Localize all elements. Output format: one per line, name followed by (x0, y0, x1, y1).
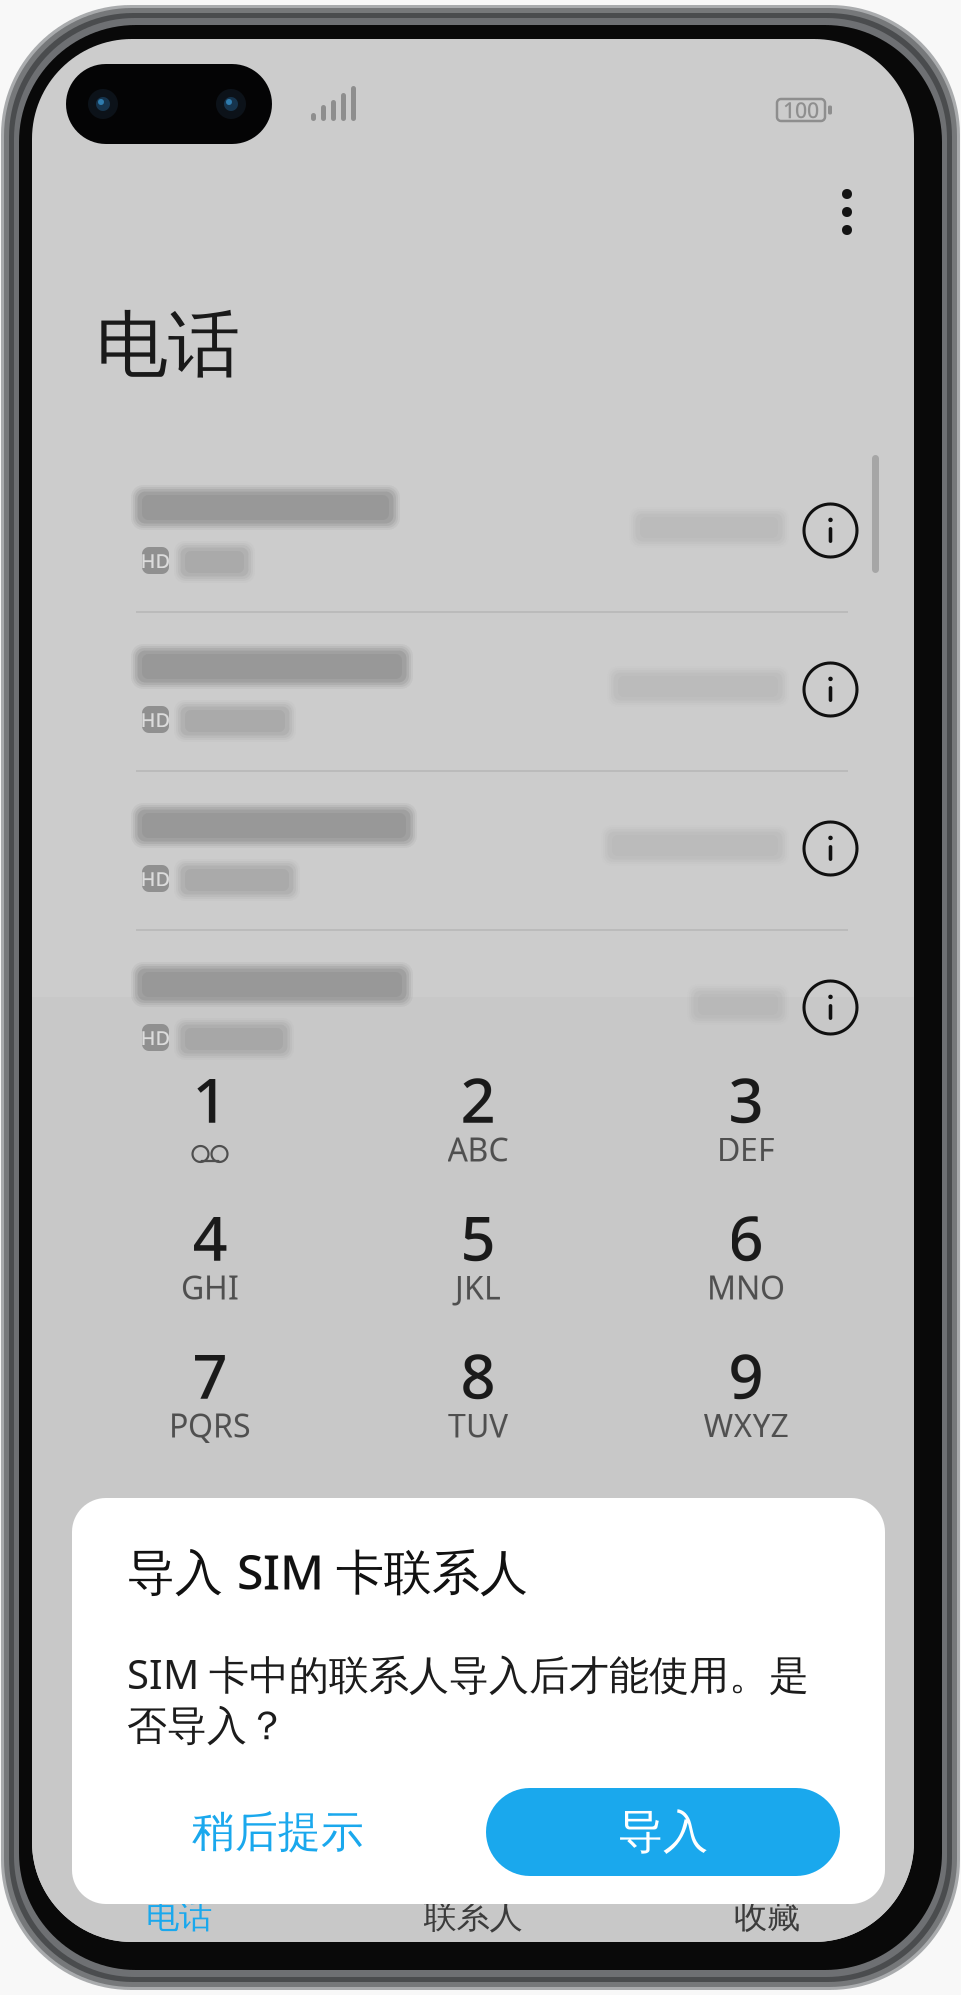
staticText: 收藏 (734, 1896, 800, 1937)
staticText: HD (140, 547, 170, 574)
staticText: SIM 卡中的联系人导入后才能使用。是 (127, 1647, 809, 1700)
staticText: ABC (447, 1128, 508, 1170)
button[interactable]: 8 (347, 1335, 609, 1473)
button[interactable]: More options (804, 169, 890, 255)
button[interactable]: HD (32, 454, 914, 611)
button[interactable]: 4 (79, 1197, 341, 1335)
staticText: TUV (448, 1404, 508, 1446)
button[interactable]: 7 (79, 1335, 341, 1473)
staticText: 导入 (618, 1804, 708, 1860)
staticText: 1 (192, 1058, 227, 1140)
button[interactable]: 5 (347, 1197, 609, 1335)
staticText: 稍后提示 (192, 1806, 364, 1858)
staticText: HD (140, 1024, 170, 1051)
staticText: 导入 SIM 卡联系人 (127, 1539, 528, 1603)
staticText: WXYZ (703, 1404, 788, 1446)
button[interactable]: 1 (79, 1059, 341, 1197)
button[interactable]: HD (32, 772, 914, 929)
button[interactable]: 电话 (32, 1896, 326, 1942)
staticText: MNO (707, 1266, 785, 1308)
staticText: JKL (455, 1266, 501, 1308)
button[interactable]: 稍后提示 (156, 1788, 400, 1876)
staticText: 8 (460, 1334, 495, 1416)
staticText: 联系人 (423, 1896, 522, 1937)
button[interactable]: 收藏 (620, 1896, 914, 1942)
staticText: 否导入？ (127, 1701, 287, 1750)
staticText: 3 (728, 1058, 763, 1140)
staticText: DEF (717, 1128, 775, 1170)
staticText: 9 (728, 1334, 763, 1416)
button[interactable]: 2 (347, 1059, 609, 1197)
staticText: 100 (783, 96, 819, 124)
button[interactable]: 3 (615, 1059, 877, 1197)
staticText: 2 (460, 1058, 495, 1140)
staticText: 电话 (96, 301, 240, 389)
staticText: HD (140, 865, 170, 892)
staticText: HD (140, 706, 170, 733)
button[interactable]: HD (32, 613, 914, 770)
button[interactable]: 导入 (486, 1788, 840, 1876)
staticText: 5 (460, 1196, 495, 1278)
button[interactable]: HD (32, 931, 914, 1088)
staticText: PQRS (169, 1404, 251, 1446)
staticText: 6 (728, 1196, 763, 1278)
button[interactable]: 6 (615, 1197, 877, 1335)
staticText: 电话 (146, 1896, 212, 1937)
button[interactable]: 9 (615, 1335, 877, 1473)
staticText: 7 (192, 1334, 227, 1416)
button[interactable]: 联系人 (326, 1896, 620, 1942)
staticText: GHI (181, 1266, 239, 1308)
staticText: 4 (192, 1196, 227, 1278)
